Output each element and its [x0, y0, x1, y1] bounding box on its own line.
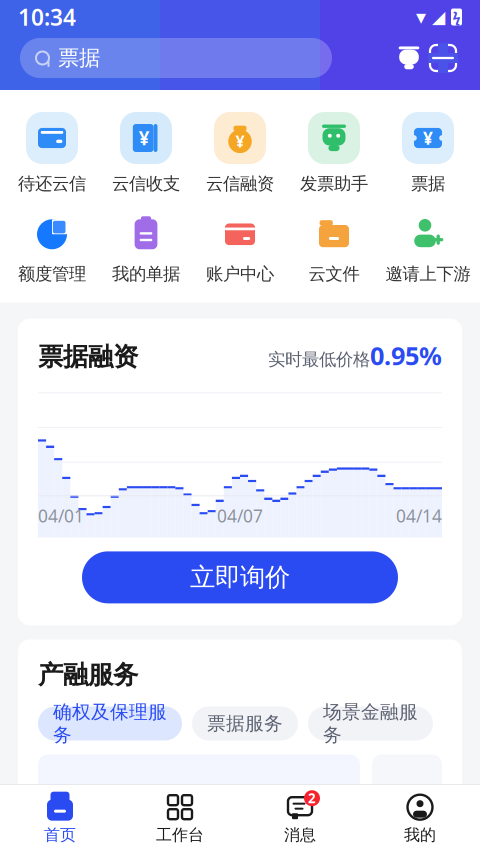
staticText: ϟ: [452, 7, 460, 27]
staticText: 云文件: [308, 263, 359, 285]
staticText: 账户中心: [206, 263, 274, 285]
button[interactable]: 发票助手: [290, 112, 378, 194]
staticText: 票据融资: [38, 341, 138, 372]
staticText: ¥: [139, 126, 150, 150]
staticText: 我的: [404, 825, 436, 845]
button[interactable]: 首页: [0, 793, 120, 845]
button[interactable]: ¥: [384, 112, 472, 194]
staticText: 产融服务: [38, 659, 138, 690]
staticText: 立即询价: [190, 562, 290, 593]
button[interactable]: ¥: [102, 112, 190, 194]
button[interactable]: 账户中心: [196, 214, 284, 285]
button[interactable]: 邀请上下游: [384, 214, 472, 285]
staticText: 云信收支: [112, 173, 180, 194]
button[interactable]: 智能助手: [392, 38, 426, 78]
staticText: 票据服务: [207, 712, 283, 735]
button[interactable]: 立即询价: [82, 551, 398, 603]
button[interactable]: 扫一扫: [426, 38, 460, 78]
button[interactable]: 我的: [360, 793, 480, 845]
staticText: 04/07: [217, 504, 263, 527]
button[interactable]: 场景金融服务: [308, 706, 433, 740]
staticText: ◢: [432, 7, 445, 27]
staticText: 0.95%: [370, 339, 442, 372]
button[interactable]: ¥: [196, 112, 284, 194]
staticText: 云信融资: [206, 173, 274, 194]
staticText: 10:34: [18, 2, 76, 32]
staticText: ¥: [423, 126, 433, 149]
staticText: 确权及保理服务: [53, 701, 167, 746]
staticText: 首页: [44, 825, 76, 845]
button[interactable]: 确权及保理服务: [38, 706, 182, 740]
button[interactable]: 工作台: [120, 793, 240, 845]
button[interactable]: 我的单据: [102, 214, 190, 285]
staticText: 2: [308, 789, 316, 807]
staticText: 发票助手: [300, 173, 368, 194]
staticText: 我的单据: [112, 263, 180, 285]
staticText: 待还云信: [18, 173, 86, 194]
staticText: 票据: [411, 173, 445, 194]
button[interactable]: 云文件: [290, 214, 378, 285]
staticText: 04/14: [396, 504, 442, 527]
button[interactable]: 额度管理: [8, 214, 96, 285]
button[interactable]: 票据服务: [192, 706, 298, 740]
staticText: 04/01: [38, 504, 84, 527]
staticText: 工作台: [156, 825, 204, 845]
staticText: 票据: [58, 45, 100, 71]
staticText: 邀请上下游: [385, 263, 470, 285]
staticText: ➜: [40, 132, 56, 153]
button[interactable]: ➜: [8, 112, 96, 194]
staticText: ▾: [416, 6, 426, 28]
staticText: 实时最低价格: [268, 349, 370, 370]
staticText: 场景金融服务: [323, 701, 418, 746]
staticText: 额度管理: [18, 263, 86, 285]
button[interactable]: 2: [240, 793, 360, 845]
staticText: ¥: [235, 131, 244, 152]
staticText: 消息: [284, 825, 316, 845]
